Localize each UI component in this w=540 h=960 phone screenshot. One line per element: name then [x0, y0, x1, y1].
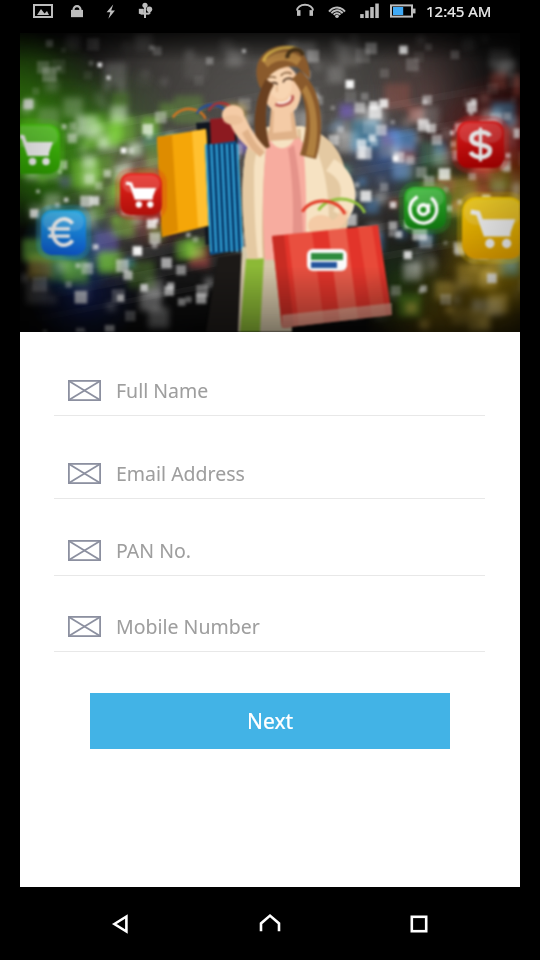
- button[interactable]: Email Address: [20, 442, 520, 499]
- staticText: PAN No.: [116, 537, 192, 564]
- staticText: Full Name: [116, 377, 209, 404]
- staticText: Email Address: [116, 460, 245, 487]
- button[interactable]: Full Name: [20, 359, 520, 416]
- button[interactable]: Recents: [391, 896, 447, 952]
- staticText: Next: [247, 707, 294, 736]
- button[interactable]: Home: [242, 896, 298, 952]
- button[interactable]: Next: [90, 693, 450, 749]
- button[interactable]: PAN No.: [20, 519, 520, 576]
- staticText: 12:45 AM: [426, 1, 492, 21]
- staticText: Mobile Number: [116, 613, 260, 640]
- button[interactable]: Mobile Number: [20, 595, 520, 652]
- button[interactable]: Back: [93, 896, 149, 952]
